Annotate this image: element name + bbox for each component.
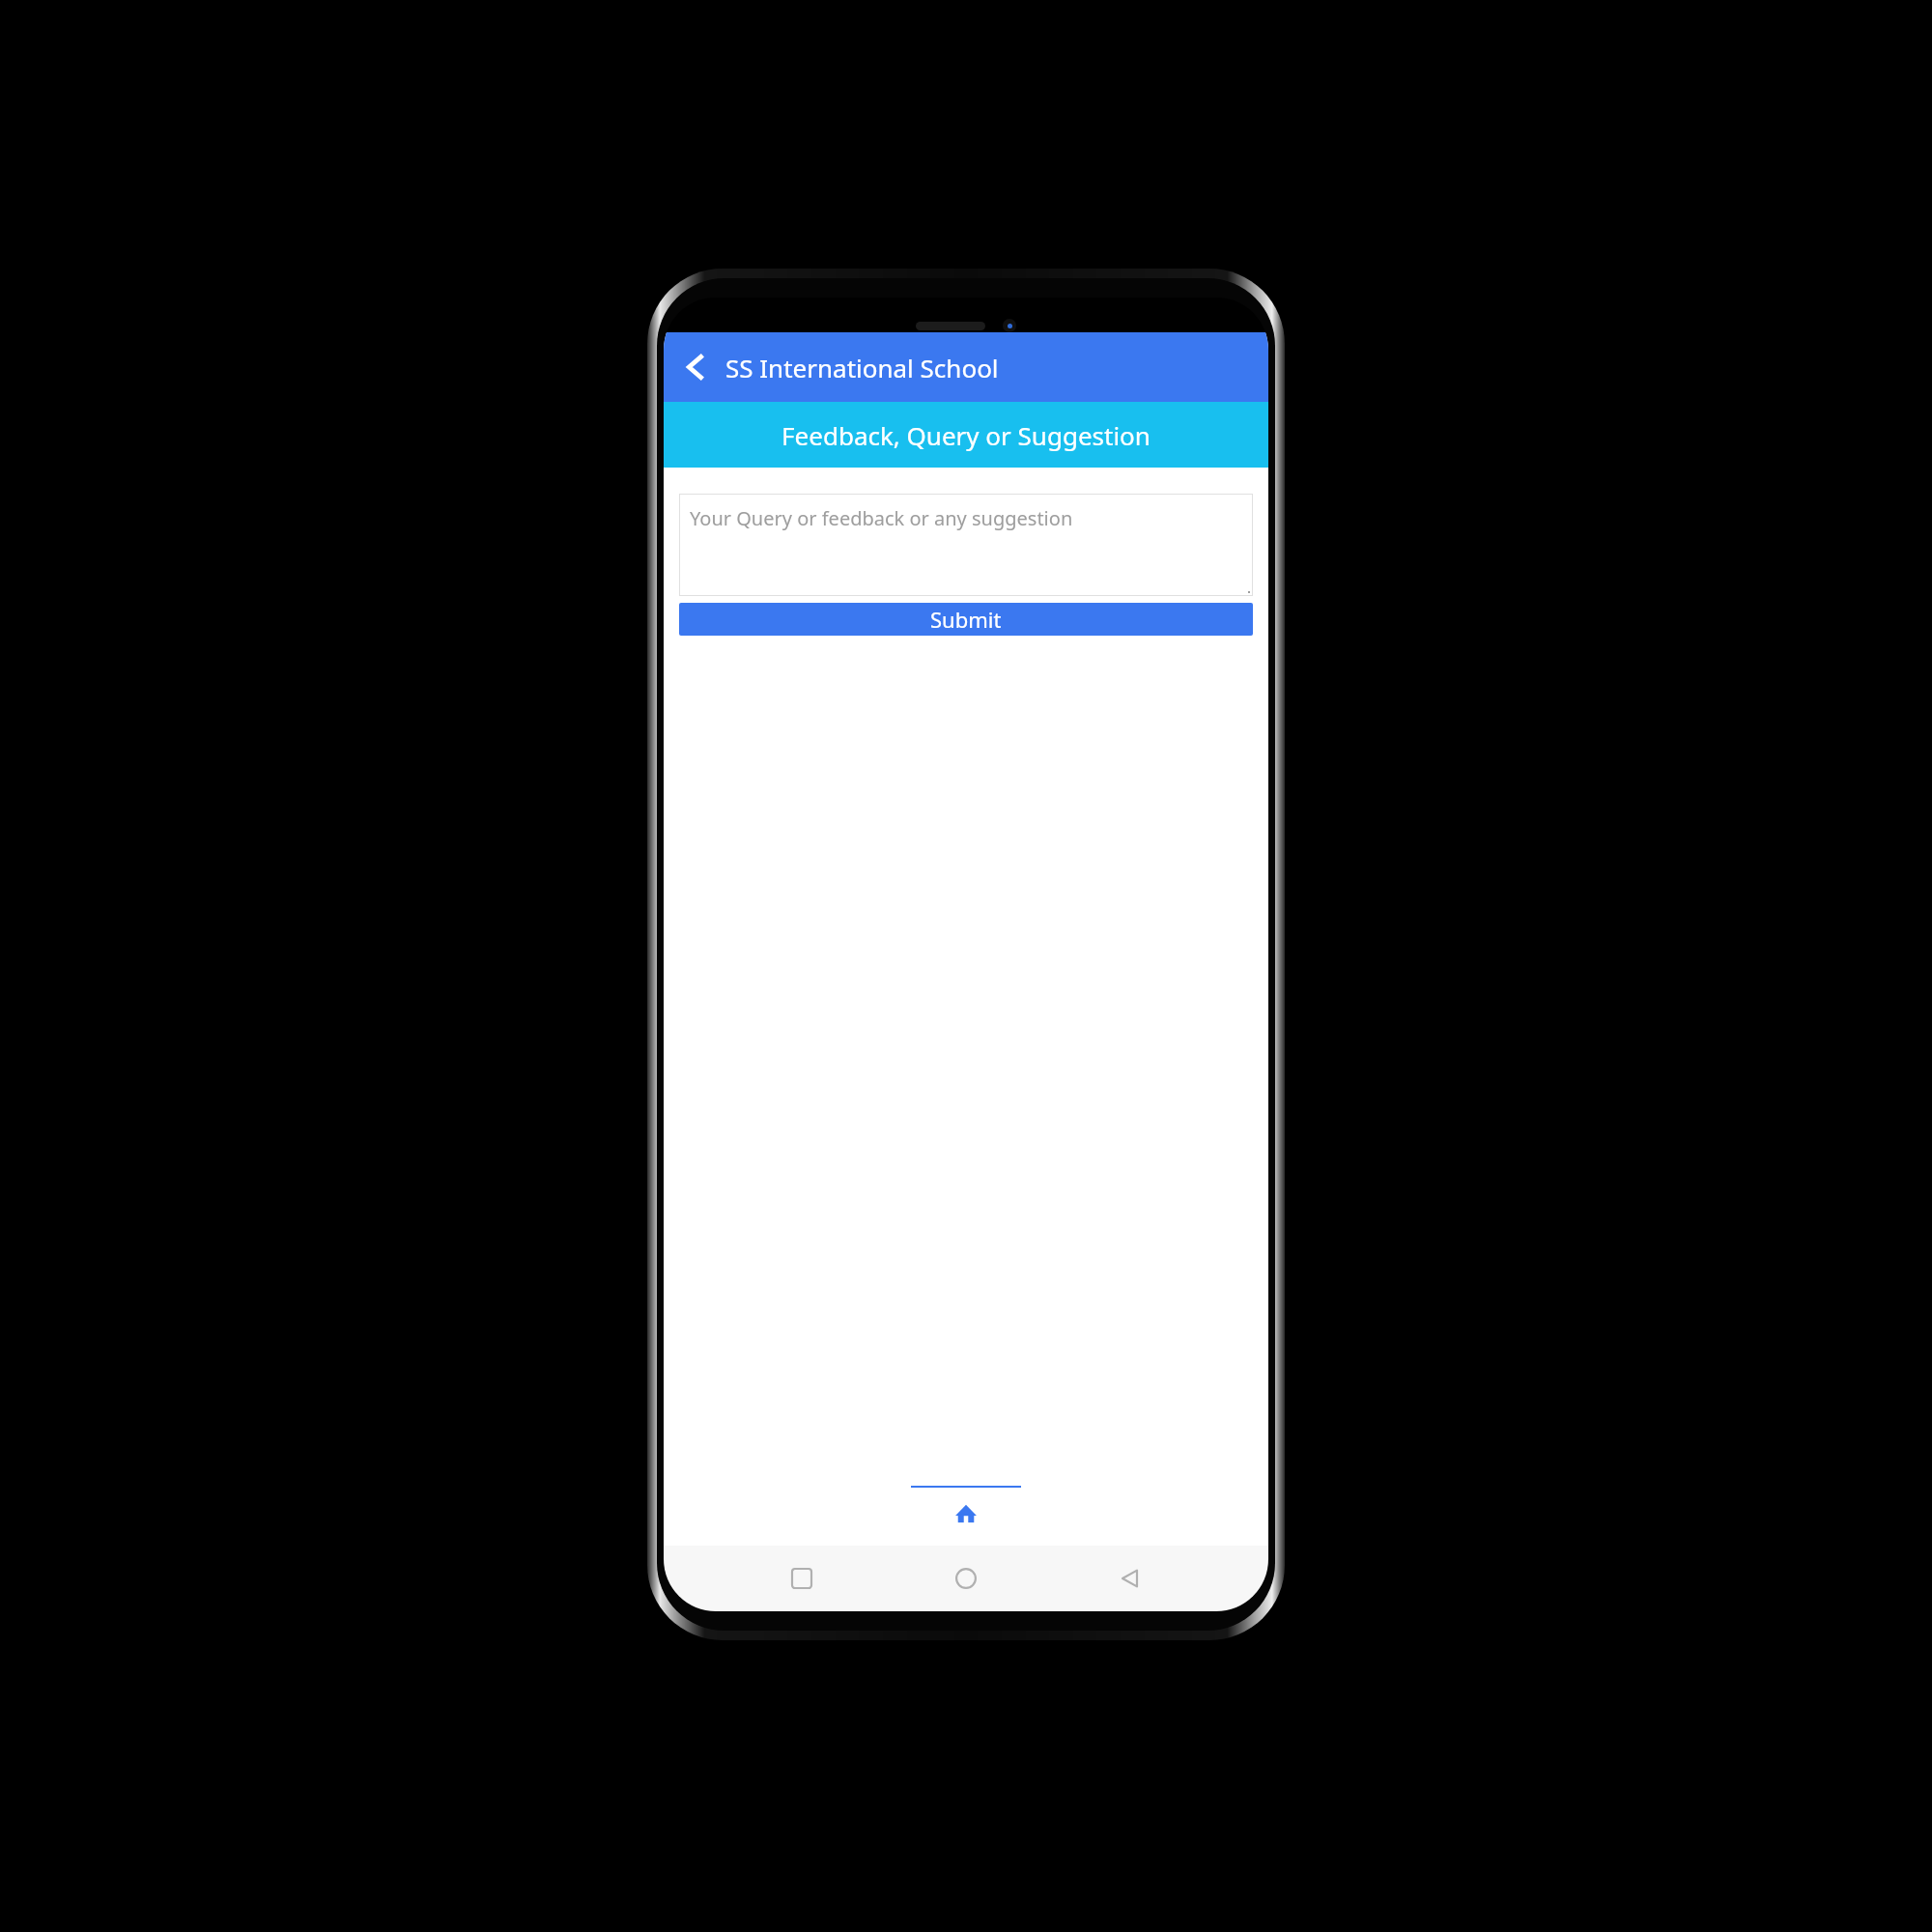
button[interactable]: Back: [1104, 1552, 1156, 1605]
staticText: SS International School: [725, 351, 999, 384]
staticText: Your Query or feedback or any suggestion: [690, 505, 1073, 531]
button[interactable]: Submit: [679, 603, 1253, 636]
button[interactable]: Your Query or feedback or any suggestion: [679, 494, 1253, 596]
staticText: Feedback, Query or Suggestion: [781, 418, 1151, 452]
button[interactable]: Home: [947, 1494, 985, 1533]
button[interactable]: Back: [669, 341, 722, 393]
button[interactable]: Home: [940, 1552, 992, 1605]
button[interactable]: Recent apps: [776, 1552, 828, 1605]
staticText: Submit: [930, 605, 1002, 634]
